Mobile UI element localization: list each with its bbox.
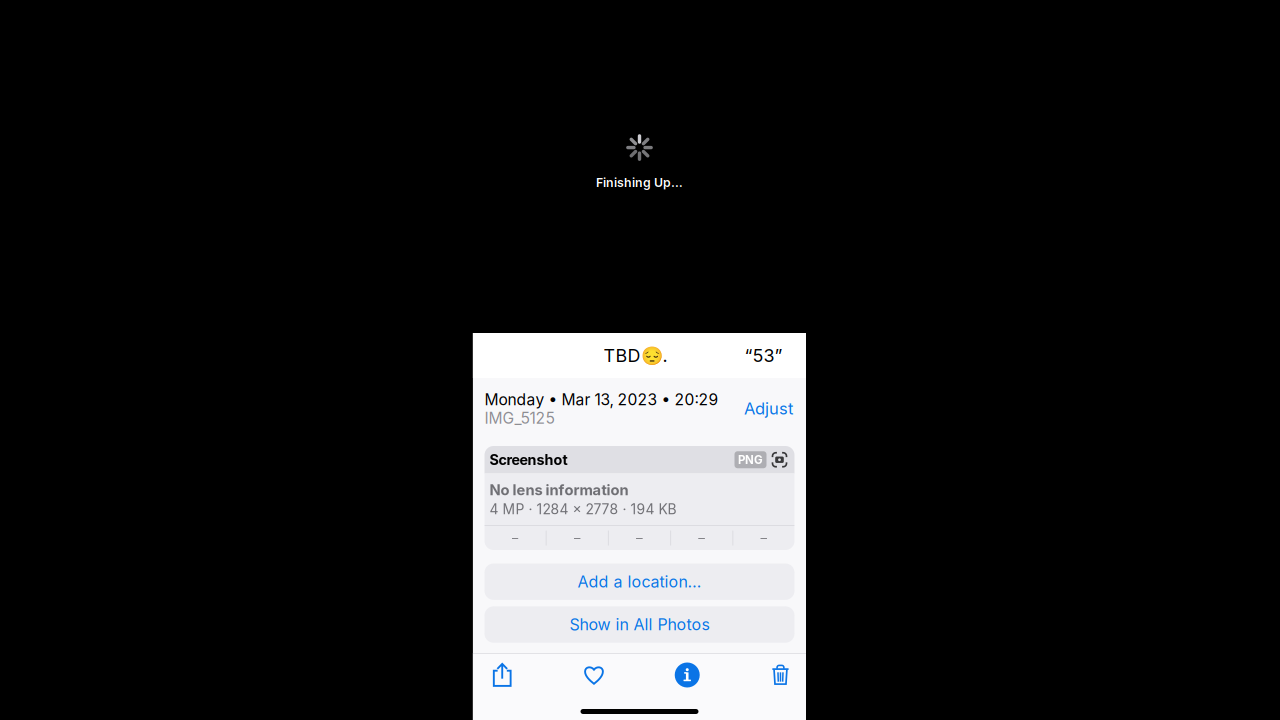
staticText: Monday • Mar 13, 2023 • 20:29 <box>485 390 719 409</box>
staticText: No lens information <box>489 481 628 499</box>
staticText: “53” <box>744 345 782 366</box>
staticText: TBD😔. <box>603 345 667 366</box>
staticText: – <box>760 530 767 546</box>
staticText: Screenshot <box>489 451 567 468</box>
button[interactable]: Show in All Photos <box>484 606 794 643</box>
staticText: – <box>698 530 705 546</box>
button[interactable]: Adjust <box>742 399 794 418</box>
button[interactable]: Delete <box>723 654 806 696</box>
staticText: – <box>636 530 643 546</box>
button[interactable]: Add a location… <box>484 563 794 600</box>
staticText: – <box>574 530 581 546</box>
staticText: Add a location… <box>577 572 701 591</box>
button[interactable]: Info <box>639 654 723 696</box>
staticText: Show in All Photos <box>569 615 709 634</box>
staticText: IMG_5125 <box>485 409 555 427</box>
staticText: Adjust <box>744 398 793 418</box>
button[interactable]: Favorite <box>556 654 639 696</box>
staticText: Finishing Up… <box>596 175 683 190</box>
button[interactable]: Share <box>473 654 556 696</box>
staticText: PNG <box>738 453 763 467</box>
staticText: – <box>512 530 519 546</box>
staticText: 4 MP · 1284 × 2778 · 194 KB <box>489 501 676 517</box>
